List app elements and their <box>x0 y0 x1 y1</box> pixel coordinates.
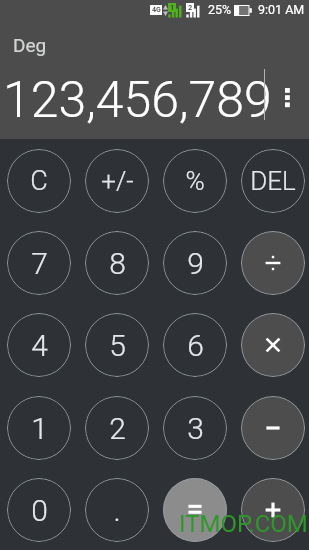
staticText: 123,456,789 <box>3 71 272 130</box>
staticText: 4G <box>152 6 161 14</box>
staticText: 8 <box>109 246 126 281</box>
staticText: 6 <box>187 328 204 363</box>
button[interactable]: Equals <box>163 478 227 542</box>
staticText: 2 <box>188 3 193 12</box>
button[interactable]: 3 <box>163 396 227 460</box>
button[interactable]: 8 <box>85 231 149 295</box>
staticText: 7 <box>31 246 48 281</box>
staticText: 9:01 AM <box>258 2 305 17</box>
staticText: 1 <box>170 3 175 12</box>
button[interactable]: Delete <box>241 149 305 213</box>
button[interactable]: 4 <box>7 313 71 377</box>
staticText: . <box>113 493 121 528</box>
button[interactable]: More options <box>275 80 299 114</box>
button[interactable]: 5 <box>85 313 149 377</box>
button[interactable]: Minus <box>241 396 305 460</box>
button[interactable]: Percent <box>163 149 227 213</box>
button[interactable]: 9 <box>163 231 227 295</box>
staticText: 1 <box>31 411 48 446</box>
button[interactable]: 2 <box>85 396 149 460</box>
button[interactable]: 0 <box>7 478 71 542</box>
staticText: 0 <box>31 493 48 528</box>
staticText: DEL <box>250 166 296 196</box>
staticText: 25% <box>208 2 232 17</box>
button[interactable]: Clear <box>7 149 71 213</box>
button[interactable]: Plus <box>241 478 305 542</box>
button[interactable]: 6 <box>163 313 227 377</box>
staticText: 4 <box>31 328 48 363</box>
staticText: 5 <box>109 328 126 363</box>
staticText: Deg <box>13 34 47 56</box>
button[interactable]: Divide <box>241 231 305 295</box>
staticText: C <box>30 165 48 197</box>
button[interactable]: Toggle sign <box>85 149 149 213</box>
staticText: % <box>185 166 205 196</box>
staticText: +/- <box>101 166 134 196</box>
button[interactable]: 7 <box>7 231 71 295</box>
button[interactable]: Multiply <box>241 313 305 377</box>
staticText: 2 <box>109 411 126 446</box>
staticText: 9 <box>187 246 204 281</box>
staticText: 3 <box>187 411 204 446</box>
button[interactable]: Decimal point <box>85 478 149 542</box>
staticText: ITMOP.COM <box>179 510 308 538</box>
button[interactable]: 1 <box>7 396 71 460</box>
